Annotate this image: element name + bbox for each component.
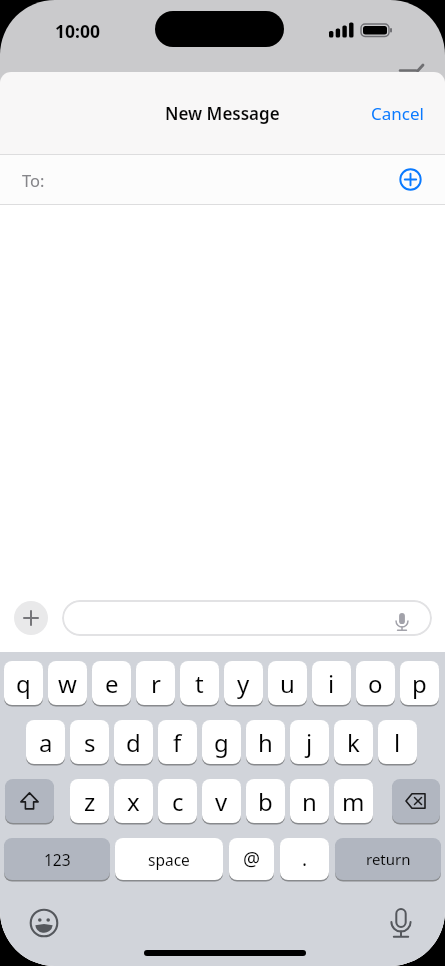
button[interactable]: q [4, 661, 43, 705]
staticText: i [328, 667, 335, 700]
staticText: 123 [44, 849, 71, 870]
button[interactable]: @ [229, 838, 274, 880]
button[interactable] [392, 779, 440, 823]
button[interactable]: b [246, 779, 285, 823]
staticText: x [127, 785, 140, 818]
staticText: o [368, 667, 383, 700]
staticText: p [412, 667, 427, 700]
button[interactable]: o [356, 661, 395, 705]
button[interactable] [399, 168, 422, 191]
staticText: 10:00 [55, 19, 100, 41]
button[interactable]: l [378, 720, 417, 764]
button[interactable] [14, 601, 48, 635]
button[interactable]: n [290, 779, 329, 823]
button[interactable] [5, 779, 54, 823]
staticText: a [39, 726, 53, 759]
staticText: g [214, 726, 229, 759]
staticText: s [84, 726, 96, 759]
button[interactable]: 123 [4, 838, 110, 880]
staticText: v [215, 785, 228, 818]
button[interactable]: j [290, 720, 329, 764]
staticText: return [366, 849, 411, 869]
button[interactable]: v [202, 779, 241, 823]
staticText: New Message [165, 102, 280, 125]
staticText: @ [243, 846, 261, 872]
button[interactable]: e [92, 661, 131, 705]
staticText: f [173, 726, 182, 759]
button[interactable]: h [246, 720, 285, 764]
button[interactable]: return [335, 838, 441, 880]
staticText: y [237, 667, 250, 700]
staticText: m [342, 785, 365, 818]
button[interactable] [29, 908, 59, 938]
button[interactable]: Cancel [352, 95, 442, 131]
staticText: Cancel [371, 102, 424, 125]
staticText: r [151, 667, 161, 700]
staticText: To: [22, 169, 45, 191]
button[interactable]: . [280, 838, 329, 880]
staticText: t [195, 667, 204, 700]
button[interactable]: x [114, 779, 153, 823]
button[interactable]: space [115, 838, 223, 880]
staticText: e [105, 667, 119, 700]
button[interactable]: s [70, 720, 109, 764]
staticText: k [347, 726, 360, 759]
staticText: b [258, 785, 273, 818]
button[interactable]: g [202, 720, 241, 764]
button[interactable]: m [334, 779, 373, 823]
button[interactable]: d [114, 720, 153, 764]
staticText: q [16, 667, 31, 700]
button[interactable]: u [268, 661, 307, 705]
staticText: l [394, 726, 401, 759]
button[interactable]: r [136, 661, 175, 705]
staticText: c [172, 785, 184, 818]
button[interactable]: k [334, 720, 373, 764]
button[interactable]: p [400, 661, 439, 705]
button[interactable]: z [70, 779, 109, 823]
staticText: w [58, 667, 77, 700]
button[interactable] [62, 600, 432, 636]
button[interactable]: a [26, 720, 65, 764]
button[interactable]: f [158, 720, 197, 764]
button[interactable]: To: [0, 155, 445, 204]
staticText: j [306, 726, 313, 759]
staticText: space [148, 849, 190, 870]
button[interactable] [387, 906, 415, 940]
staticText: d [126, 726, 141, 759]
button[interactable]: y [224, 661, 263, 705]
button[interactable]: c [158, 779, 197, 823]
staticText: n [302, 785, 317, 818]
button[interactable]: i [312, 661, 351, 705]
staticText: . [302, 846, 308, 872]
staticText: u [280, 667, 295, 700]
button[interactable]: w [48, 661, 87, 705]
button[interactable]: t [180, 661, 219, 705]
staticText: h [258, 726, 273, 759]
staticText: z [84, 785, 96, 818]
